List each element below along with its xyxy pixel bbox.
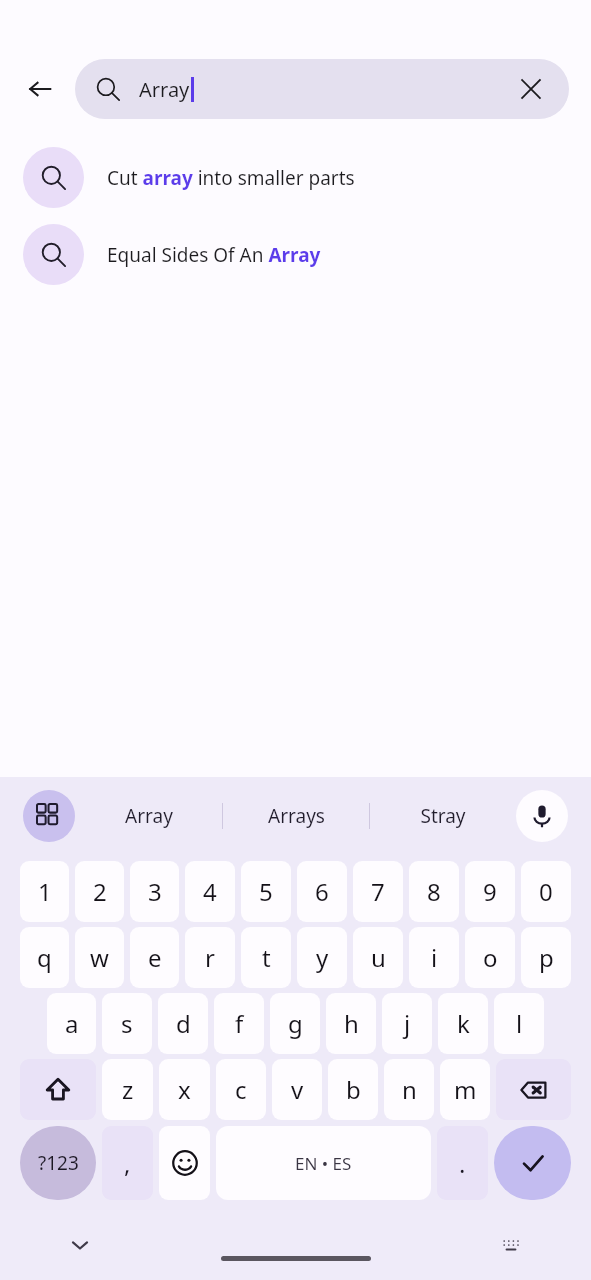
button[interactable]: m bbox=[440, 1059, 490, 1120]
button[interactable]: 0 bbox=[521, 861, 571, 922]
staticText: l bbox=[516, 1007, 523, 1040]
button[interactable]: Toolbar bbox=[23, 790, 75, 842]
staticText: , bbox=[124, 1147, 131, 1180]
staticText: g bbox=[288, 1007, 303, 1040]
button[interactable]: d bbox=[158, 993, 208, 1054]
button[interactable]: g bbox=[270, 993, 320, 1054]
staticText: x bbox=[178, 1073, 191, 1106]
button[interactable]: 5 bbox=[241, 861, 291, 922]
button[interactable]: u bbox=[353, 927, 403, 988]
button[interactable]: b bbox=[328, 1059, 378, 1120]
button[interactable]: . bbox=[437, 1126, 488, 1200]
staticText: i bbox=[431, 941, 438, 974]
staticText: Equal Sides Of An Array bbox=[107, 242, 321, 268]
staticText: 2 bbox=[93, 875, 107, 908]
staticText: s bbox=[121, 1007, 133, 1040]
button[interactable]: Cut array into smaller parts bbox=[0, 139, 591, 216]
button[interactable]: Back bbox=[14, 63, 66, 115]
button[interactable]: n bbox=[384, 1059, 434, 1120]
staticText: v bbox=[291, 1073, 304, 1106]
button[interactable]: Switch keyboard bbox=[491, 1225, 531, 1265]
button[interactable]: 9 bbox=[465, 861, 515, 922]
button[interactable]: z bbox=[102, 1059, 153, 1120]
button[interactable]: a bbox=[47, 993, 96, 1054]
button[interactable]: t bbox=[241, 927, 291, 988]
button[interactable]: Voice input bbox=[516, 790, 568, 842]
staticText: Stray bbox=[420, 803, 466, 829]
staticText: d bbox=[176, 1007, 191, 1040]
staticText: EN • ES bbox=[295, 1152, 352, 1175]
button[interactable]: s bbox=[102, 993, 152, 1054]
button[interactable]: , bbox=[102, 1126, 153, 1200]
staticText: 5 bbox=[259, 875, 273, 908]
button[interactable]: k bbox=[438, 993, 488, 1054]
button[interactable]: Equal Sides Of An Array bbox=[0, 216, 591, 293]
staticText: u bbox=[371, 941, 386, 974]
staticText: 9 bbox=[483, 875, 497, 908]
button[interactable]: 3 bbox=[130, 861, 179, 922]
button[interactable]: ?123 bbox=[20, 1126, 96, 1200]
button[interactable]: w bbox=[75, 927, 124, 988]
staticText: Array bbox=[125, 803, 173, 829]
button[interactable]: q bbox=[20, 927, 69, 988]
button[interactable]: Backspace bbox=[496, 1059, 571, 1120]
staticText: p bbox=[539, 941, 554, 974]
staticText: n bbox=[402, 1073, 417, 1106]
staticText: z bbox=[122, 1073, 134, 1106]
button[interactable]: f bbox=[214, 993, 264, 1054]
button[interactable]: Stray bbox=[370, 777, 516, 855]
button[interactable]: 4 bbox=[185, 861, 235, 922]
button[interactable]: 8 bbox=[409, 861, 459, 922]
button[interactable]: Array bbox=[75, 777, 222, 855]
button[interactable]: 6 bbox=[297, 861, 347, 922]
button[interactable]: Emoji bbox=[159, 1126, 210, 1200]
button[interactable]: c bbox=[216, 1059, 266, 1120]
staticText: a bbox=[65, 1007, 79, 1040]
staticText: r bbox=[205, 941, 215, 974]
button[interactable]: r bbox=[185, 927, 235, 988]
staticText: w bbox=[90, 941, 109, 974]
staticText: b bbox=[346, 1073, 361, 1106]
button[interactable]: Clear search bbox=[511, 69, 551, 109]
staticText: 3 bbox=[148, 875, 162, 908]
staticText: o bbox=[483, 941, 498, 974]
button[interactable]: h bbox=[326, 993, 376, 1054]
button[interactable]: EN • ES bbox=[216, 1126, 431, 1200]
button[interactable]: l bbox=[494, 993, 544, 1054]
staticText: y bbox=[316, 941, 329, 974]
button[interactable]: i bbox=[409, 927, 459, 988]
button[interactable]: j bbox=[382, 993, 432, 1054]
button[interactable]: y bbox=[297, 927, 347, 988]
button[interactable]: Shift bbox=[20, 1059, 96, 1120]
staticText: m bbox=[454, 1073, 477, 1106]
button[interactable]: Array bbox=[75, 59, 569, 119]
staticText: 1 bbox=[38, 875, 52, 908]
button[interactable]: o bbox=[465, 927, 515, 988]
staticText: 4 bbox=[203, 875, 217, 908]
staticText: 7 bbox=[371, 875, 385, 908]
staticText: Cut array into smaller parts bbox=[107, 165, 355, 191]
staticText: Arrays bbox=[268, 803, 325, 829]
button[interactable]: p bbox=[521, 927, 571, 988]
staticText: t bbox=[262, 941, 271, 974]
staticText: 6 bbox=[315, 875, 329, 908]
staticText: ?123 bbox=[38, 1150, 79, 1176]
button[interactable]: v bbox=[272, 1059, 322, 1120]
button[interactable]: Hide keyboard bbox=[58, 1223, 102, 1267]
staticText: q bbox=[37, 941, 52, 974]
button[interactable]: 1 bbox=[20, 861, 69, 922]
staticText: k bbox=[457, 1007, 470, 1040]
staticText: f bbox=[235, 1007, 244, 1040]
staticText: c bbox=[235, 1073, 247, 1106]
button[interactable]: 7 bbox=[353, 861, 403, 922]
button[interactable]: x bbox=[159, 1059, 210, 1120]
staticText: 8 bbox=[427, 875, 441, 908]
button[interactable]: Enter bbox=[494, 1126, 571, 1200]
button[interactable]: Arrays bbox=[223, 777, 369, 855]
staticText: h bbox=[344, 1007, 359, 1040]
staticText: . bbox=[459, 1147, 466, 1180]
staticText: j bbox=[404, 1007, 411, 1040]
staticText: e bbox=[148, 941, 162, 974]
button[interactable]: 2 bbox=[75, 861, 124, 922]
button[interactable]: e bbox=[130, 927, 179, 988]
